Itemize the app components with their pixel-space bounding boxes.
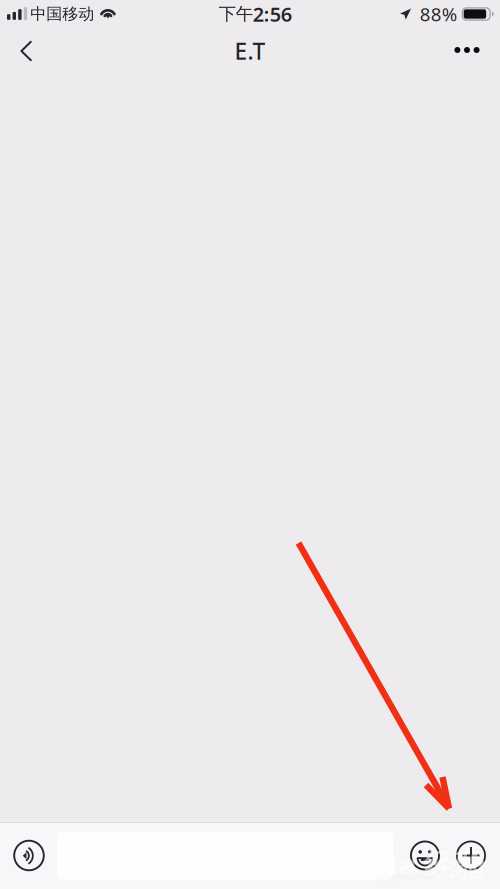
staticText: 下午 [219, 3, 253, 25]
button[interactable]: Emoji [401, 822, 449, 889]
staticText: E.T [234, 36, 265, 66]
staticText: jingyan.baidu.com [381, 870, 449, 881]
button[interactable]: Back [4, 28, 48, 72]
button[interactable]: Voice message [7, 822, 51, 889]
button[interactable]: More [445, 28, 489, 72]
staticText: 中国移动 [30, 4, 94, 24]
staticText: Ba 经验 [378, 844, 486, 885]
button[interactable]: More options [449, 822, 493, 889]
staticText: 2:56 [253, 1, 292, 27]
staticText: 88% [420, 2, 458, 26]
